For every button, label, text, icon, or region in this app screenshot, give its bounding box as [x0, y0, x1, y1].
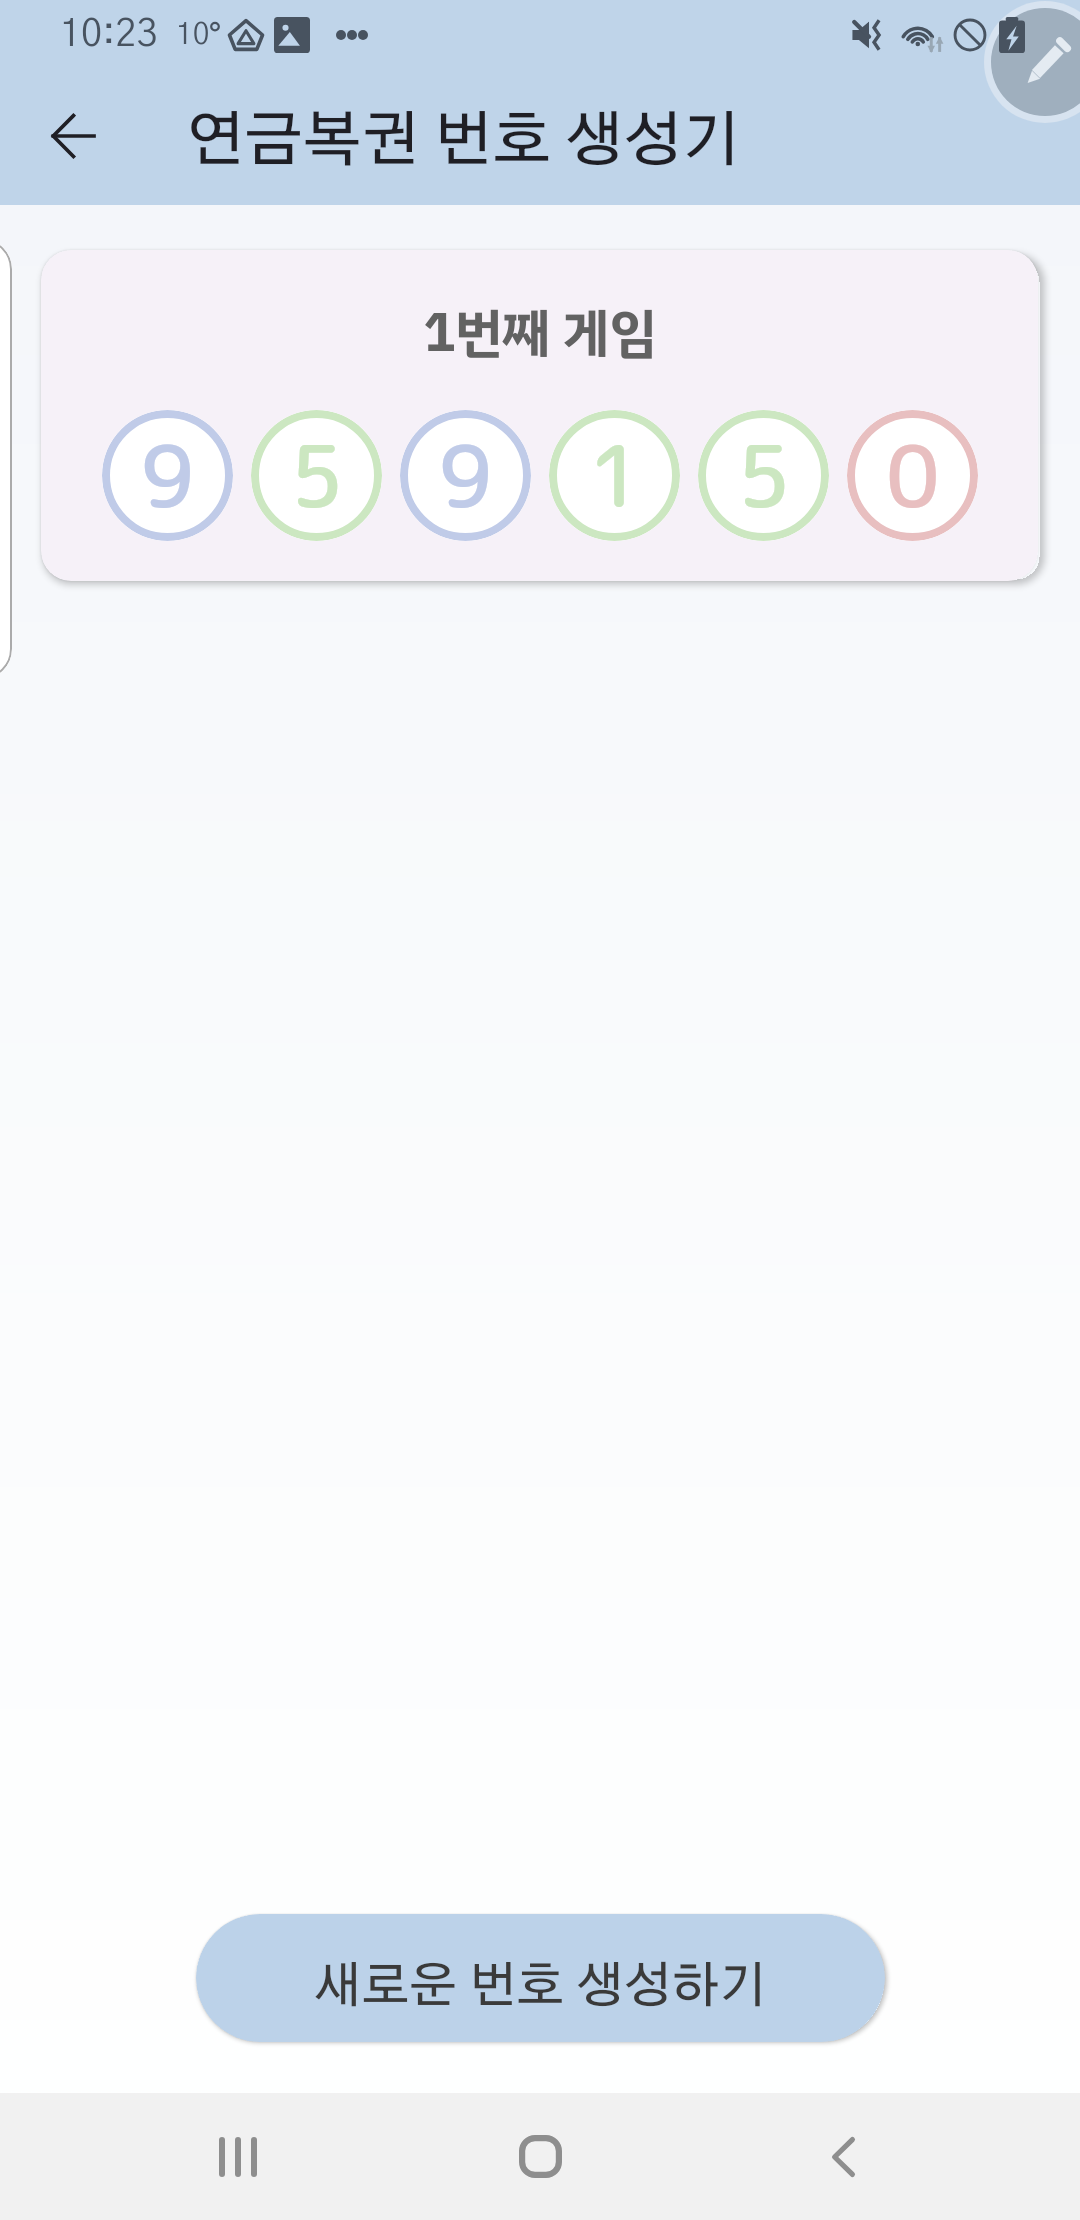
staticText: 10:23 — [60, 16, 158, 54]
button[interactable]: Recent apps — [173, 2093, 303, 2220]
staticText: 1번째 게임 — [423, 293, 657, 373]
staticText: 1 — [588, 416, 642, 535]
staticText: 5 — [737, 416, 791, 535]
staticText: 9 — [141, 416, 195, 535]
button[interactable]: 새로운 번호 생성하기 — [196, 1914, 885, 2042]
staticText: 9 — [439, 416, 493, 535]
button[interactable]: Back — [778, 2093, 908, 2220]
staticText: 5 — [290, 416, 344, 535]
button[interactable]: 1번째 게임 — [41, 250, 1038, 581]
button[interactable]: Edit — [984, 1, 1080, 123]
staticText: 0 — [886, 416, 940, 535]
button[interactable]: Back — [28, 91, 118, 181]
staticText: 연금복권 번호 생성기 — [186, 112, 741, 172]
staticText: 10 — [176, 20, 210, 50]
staticText: 새로운 번호 생성하기 — [314, 1963, 767, 2012]
button[interactable]: Home — [475, 2093, 605, 2220]
